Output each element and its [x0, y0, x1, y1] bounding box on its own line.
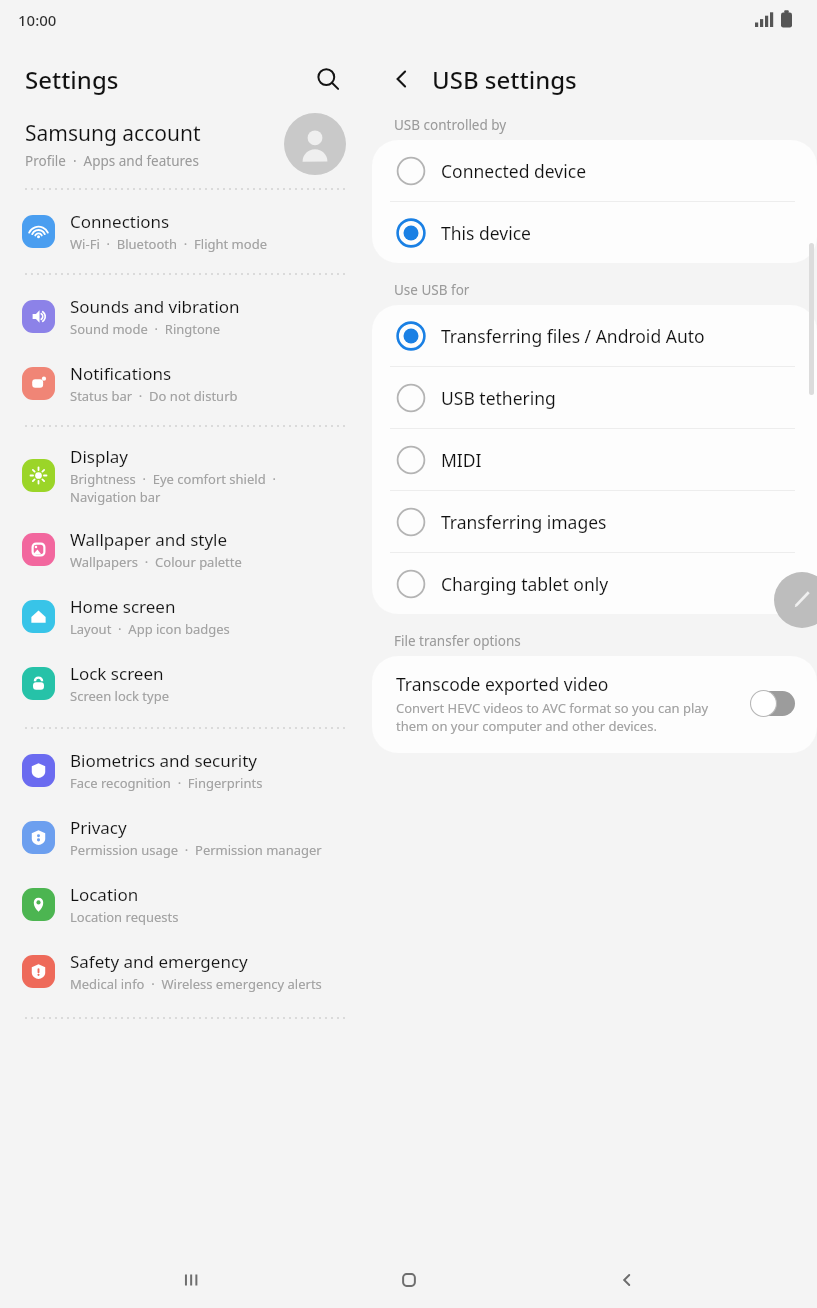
button[interactable]: Search	[306, 57, 350, 101]
staticText: Navigation bar	[70, 488, 161, 506]
button[interactable]: Transcode exported video	[372, 656, 817, 753]
staticText: Wi-Fi · Bluetooth · Flight mode	[70, 235, 267, 253]
staticText: Transcode exported video	[396, 672, 609, 696]
staticText: Layout · App icon badges	[70, 620, 230, 638]
button[interactable]: Back	[599, 1252, 655, 1308]
staticText: Samsung account	[25, 119, 201, 148]
staticText: Settings	[25, 63, 119, 96]
staticText: USB tethering	[441, 386, 556, 410]
staticText: Location requests	[70, 908, 179, 926]
staticText: Face recognition · Fingerprints	[70, 774, 263, 792]
staticText: Screen lock type	[70, 687, 169, 705]
button[interactable]: Recents	[163, 1252, 219, 1308]
staticText: Connected device	[441, 159, 587, 183]
staticText: Sound mode · Ringtone	[70, 320, 221, 338]
button[interactable]: Privacy	[0, 810, 370, 865]
staticText: Use USB for	[394, 281, 470, 299]
button[interactable]: Home screen	[0, 589, 370, 644]
button[interactable]: Connections	[0, 204, 370, 259]
button[interactable]: MIDI	[372, 429, 817, 490]
staticText: Display	[70, 445, 128, 468]
staticText: USB controlled by	[394, 116, 507, 134]
button[interactable]: Back	[380, 57, 424, 101]
staticText: Safety and emergency	[70, 950, 248, 973]
button[interactable]: Wallpaper and style	[0, 522, 370, 577]
staticText: USB settings	[432, 63, 577, 96]
staticText: Medical info · Wireless emergency alerts	[70, 975, 322, 993]
staticText: Permission usage · Permission manager	[70, 841, 322, 859]
staticText: Convert HEVC videos to AVC format so you…	[396, 699, 739, 735]
button[interactable]: Biometrics and security	[0, 743, 370, 798]
staticText: Brightness · Eye comfort shield ·	[70, 470, 276, 488]
staticText: Charging tablet only	[441, 572, 609, 596]
button[interactable]: Edit	[774, 572, 817, 628]
button[interactable]: Samsung account	[0, 106, 370, 182]
button[interactable]: Home	[381, 1252, 437, 1308]
staticText: File transfer options	[394, 632, 521, 650]
staticText: Notifications	[70, 362, 172, 385]
staticText: MIDI	[441, 448, 482, 472]
button[interactable]: Display	[0, 439, 370, 512]
button[interactable]: This device	[372, 202, 817, 263]
button[interactable]: Transferring images	[372, 491, 817, 552]
button[interactable]: Connected device	[372, 140, 817, 201]
button[interactable]: USB tethering	[372, 367, 817, 428]
staticText: 10:00	[18, 10, 57, 30]
button[interactable]: Notifications	[0, 356, 370, 411]
staticText: Wallpaper and style	[70, 528, 228, 551]
staticText: Status bar · Do not disturb	[70, 387, 238, 405]
staticText: Transferring files / Android Auto	[441, 324, 705, 348]
staticText: Privacy	[70, 816, 127, 839]
button[interactable]: Charging tablet only	[372, 553, 817, 614]
button[interactable]: Transferring files / Android Auto	[372, 305, 817, 366]
staticText: Connections	[70, 210, 170, 233]
staticText: Sounds and vibration	[70, 295, 240, 318]
staticText: Home screen	[70, 595, 176, 618]
button[interactable]: Safety and emergency	[0, 944, 370, 999]
staticText: Lock screen	[70, 662, 164, 685]
staticText: Profile · Apps and features	[25, 152, 199, 170]
button[interactable]: Sounds and vibration	[0, 289, 370, 344]
staticText: This device	[441, 221, 531, 245]
button[interactable]: Lock screen	[0, 656, 370, 711]
staticText: Location	[70, 883, 139, 906]
staticText: Transferring images	[441, 510, 607, 534]
staticText: Biometrics and security	[70, 749, 257, 772]
button[interactable]: Location	[0, 877, 370, 932]
staticText: Wallpapers · Colour palette	[70, 553, 242, 571]
